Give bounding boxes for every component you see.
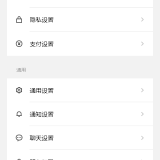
button[interactable]: 朋友权限 [7,0,153,8]
button[interactable]: 通知设置 [7,102,153,126]
staticText: 聊天设置 [29,133,53,142]
button[interactable]: 隐私设置 [7,8,153,32]
button[interactable]: 通用设置 [7,79,153,102]
staticText: 通用设置 [29,86,53,95]
staticText: 支付设置 [29,39,53,48]
staticText: 朋友权限 [29,157,53,160]
button[interactable]: 朋友权限 [7,150,153,160]
button[interactable]: 支付设置 [7,32,153,56]
staticText: 隐私设置 [29,15,53,24]
staticText: 通用 [16,66,26,73]
staticText: 通知设置 [29,109,53,119]
button[interactable]: 聊天设置 [7,126,153,150]
